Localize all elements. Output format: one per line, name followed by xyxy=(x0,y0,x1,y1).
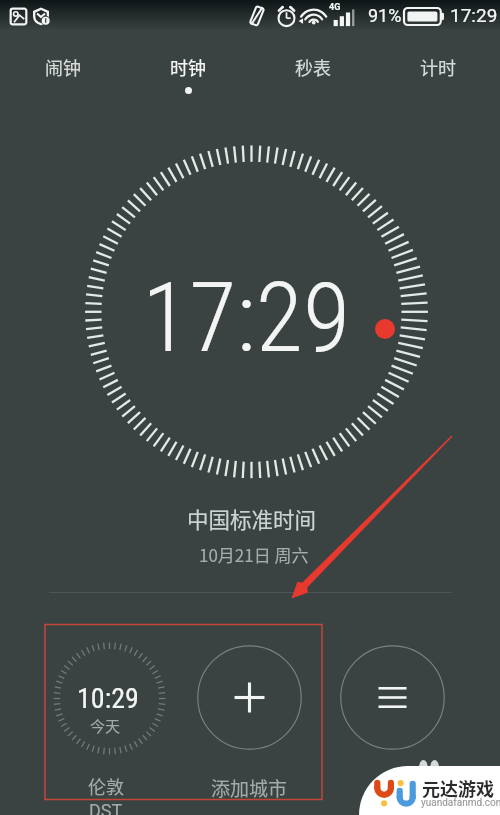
staticText: 计时 xyxy=(420,54,456,80)
staticText: 伦敦 xyxy=(88,773,124,799)
button[interactable]: 秒表 xyxy=(250,54,375,100)
staticText: 10:29 xyxy=(77,682,139,715)
button[interactable]: 时钟 xyxy=(125,54,250,100)
staticText: 闹钟 xyxy=(45,54,81,80)
button[interactable]: 闹钟 xyxy=(0,54,125,100)
staticText: 4G xyxy=(329,2,341,13)
button[interactable] xyxy=(53,642,166,755)
staticText: 秒表 xyxy=(295,54,331,80)
staticText: DST xyxy=(89,800,123,815)
staticText: 今天 xyxy=(90,715,121,737)
staticText: 17:29 xyxy=(450,4,498,26)
staticText: 元达游戏 xyxy=(422,775,494,801)
staticText: 91% xyxy=(368,5,402,26)
button[interactable]: 添加城市 xyxy=(197,645,302,750)
staticText: 10月21日 周六 xyxy=(199,542,309,567)
button[interactable]: 菜单 xyxy=(340,645,445,750)
staticText: 添加城市 xyxy=(211,774,288,802)
staticText: 中国标准时间 xyxy=(187,503,317,534)
button[interactable]: 计时 xyxy=(375,54,500,100)
staticText: 17:29 xyxy=(142,261,351,375)
staticText: yuandafanmd.com xyxy=(421,797,500,809)
staticText: 时钟 xyxy=(170,54,206,80)
